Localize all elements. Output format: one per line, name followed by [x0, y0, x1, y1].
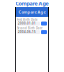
staticText: Compare Age — [15, 0, 48, 7]
button[interactable] — [41, 21, 47, 25]
staticText: Second Birth Date — [17, 26, 43, 30]
staticText: Compare Age — [18, 9, 45, 15]
staticText: 2004-06-15 — [18, 30, 36, 34]
button[interactable] — [41, 30, 47, 34]
staticText: 2000-01-01 — [18, 22, 36, 25]
staticText: First Birth Date — [17, 18, 38, 21]
